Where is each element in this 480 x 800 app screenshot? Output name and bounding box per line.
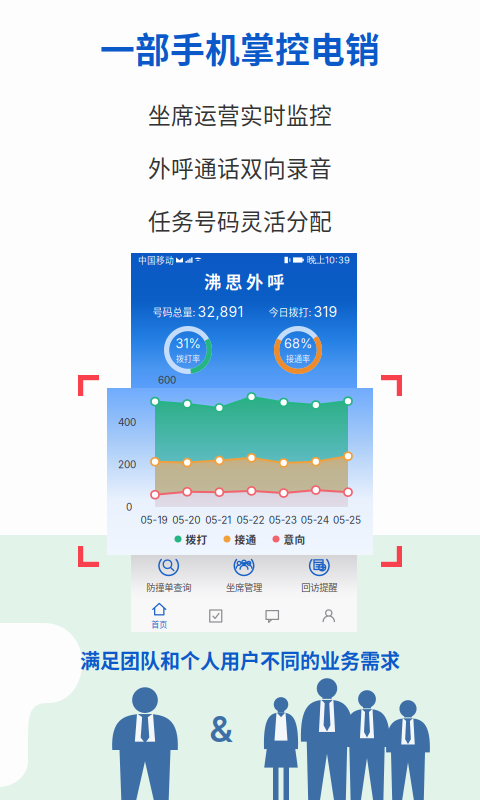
staticText: 68%: [284, 336, 312, 351]
staticText: &: [209, 707, 232, 751]
staticText: 05-23: [269, 514, 297, 526]
staticText: 拨打率: [176, 352, 200, 364]
staticText: 05-24: [301, 514, 329, 526]
staticText: 31%: [175, 336, 200, 351]
button[interactable]: 防撞单查询: [132, 556, 206, 592]
staticText: 拨打: [185, 531, 207, 547]
staticText: 晚上10:39: [307, 254, 350, 266]
staticText: 接通: [234, 531, 256, 547]
button[interactable]: 坐席管理: [207, 556, 281, 592]
button[interactable]: 首页: [137, 601, 181, 629]
staticText: 中国移动: [138, 254, 174, 266]
staticText: 600: [158, 374, 176, 386]
staticText: 任务号码灵活分配: [148, 204, 332, 236]
staticText: 接通率: [286, 352, 310, 364]
staticText: 首页: [151, 618, 167, 630]
staticText: 沸 思 外 呼: [204, 268, 284, 294]
button[interactable]: 任务: [194, 601, 238, 629]
staticText: 满足团队和个人用户不同的业务需求: [80, 645, 400, 674]
staticText: 坐席管理: [226, 580, 262, 594]
staticText: 一部手机掌控电销: [100, 23, 380, 73]
staticText: 意向: [283, 531, 305, 547]
staticText: 05-20: [172, 514, 200, 526]
staticText: 外呼通话双向录音: [148, 151, 332, 183]
staticText: 回访提醒: [301, 580, 337, 594]
staticText: 0: [126, 501, 132, 513]
staticText: 319: [313, 303, 337, 320]
button[interactable]: 我的: [307, 601, 351, 629]
button[interactable]: 消息: [250, 601, 294, 629]
staticText: 05-21: [205, 514, 231, 526]
staticText: 32,891: [197, 303, 243, 320]
staticText: 05-19: [140, 514, 167, 526]
staticText: 400: [118, 416, 136, 428]
staticText: 05-25: [333, 514, 361, 526]
staticText: 05-22: [236, 514, 264, 526]
button[interactable]: 回访提醒: [282, 556, 356, 592]
staticText: 200: [118, 459, 136, 471]
staticText: 防撞单查询: [146, 580, 191, 594]
staticText: 号码总量:: [152, 305, 195, 319]
staticText: 今日拨打:: [268, 305, 311, 319]
staticText: 坐席运营实时监控: [148, 98, 332, 130]
